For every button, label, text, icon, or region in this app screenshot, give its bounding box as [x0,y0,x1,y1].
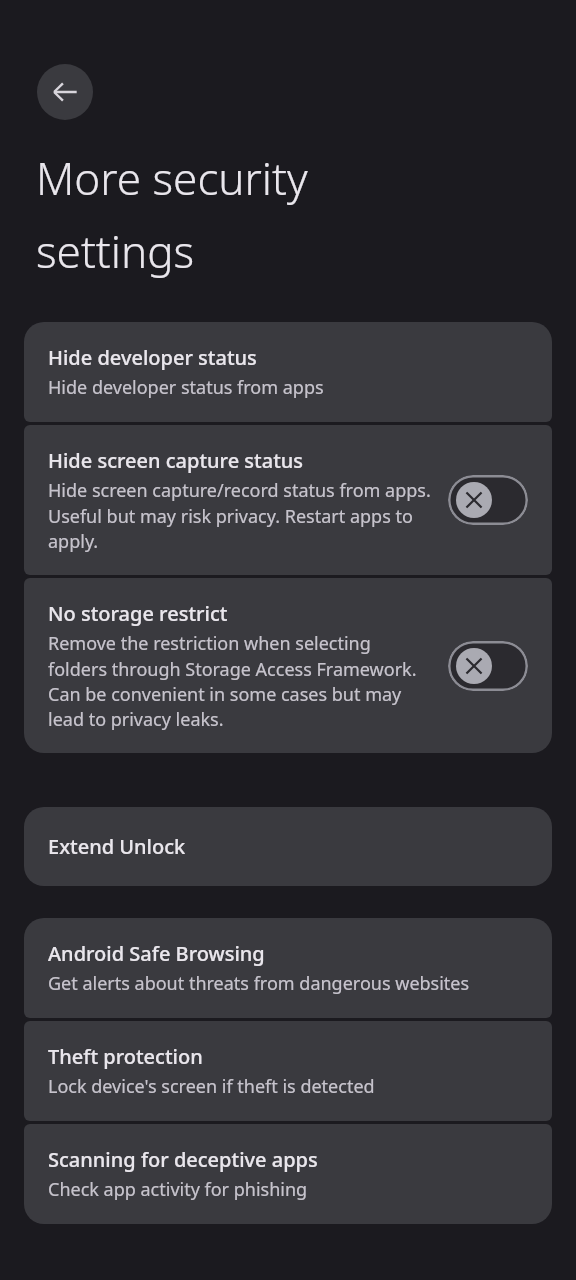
button[interactable]: Theft protection [24,1021,552,1121]
staticText: Extend Unlock [48,833,186,860]
staticText: Get alerts about threats from dangerous … [48,971,470,996]
button[interactable]: Hide developer status [24,322,552,422]
staticText: Theft protection [48,1043,203,1070]
staticText: Hide developer status from apps [48,375,324,400]
staticText: Android Safe Browsing [48,940,265,967]
button[interactable]: Scanning for deceptive apps [24,1124,552,1224]
button[interactable]: Hide screen capture status [24,425,552,575]
staticText: Check app activity for phishing [48,1177,308,1202]
staticText: No storage restrict [48,600,228,627]
staticText: Hide screen capture/record status from a… [48,478,432,553]
button[interactable]: Toggle off [448,475,528,525]
button[interactable]: Android Safe Browsing [24,918,552,1018]
staticText: Scanning for deceptive apps [48,1146,318,1173]
staticText: Lock device's screen if theft is detecte… [48,1074,375,1099]
staticText: More security settings [36,148,308,280]
staticText: Hide developer status [48,344,257,371]
button[interactable]: Extend Unlock [24,807,552,886]
button[interactable]: Back [37,64,93,120]
button[interactable]: Toggle off [448,641,528,691]
staticText: Hide screen capture status [48,447,304,474]
button[interactable]: No storage restrict [24,578,552,753]
staticText: Remove the restriction when selecting fo… [48,631,432,731]
